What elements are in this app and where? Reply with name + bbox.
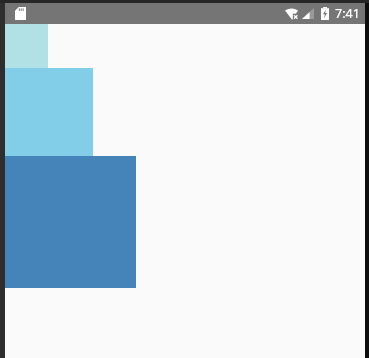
button[interactable]: SD card notification bbox=[15, 7, 26, 20]
button[interactable]: System status: Wi-Fi, signal, battery bbox=[285, 5, 360, 22]
staticText: 7:41 bbox=[335, 5, 360, 22]
